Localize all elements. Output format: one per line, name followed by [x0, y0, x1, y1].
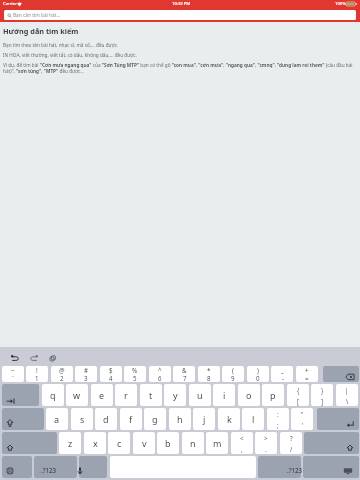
button[interactable]: j: [193, 408, 215, 430]
staticText: r: [124, 389, 128, 401]
button[interactable]: r: [115, 384, 137, 406]
button[interactable]: Change keyboard: [2, 456, 32, 478]
button[interactable]: ?: [280, 432, 302, 454]
staticText: k: [227, 413, 232, 425]
button[interactable]: o: [238, 384, 260, 406]
button[interactable]: s: [71, 408, 93, 430]
staticText: ;: [277, 421, 279, 429]
button[interactable]: Redo: [29, 353, 39, 363]
staticText: #: [84, 366, 88, 374]
staticText: ": [301, 410, 304, 418]
button[interactable]: f: [120, 408, 142, 430]
button[interactable]: u: [189, 384, 211, 406]
button[interactable]: q: [42, 384, 64, 406]
button[interactable]: ~: [2, 366, 24, 382]
button[interactable]: |: [336, 384, 358, 406]
staticText: !: [36, 366, 38, 374]
button[interactable]: m: [206, 432, 228, 454]
button[interactable]: +: [296, 366, 318, 382]
button[interactable]: _: [271, 366, 293, 382]
button[interactable]: >: [255, 432, 277, 454]
button[interactable]: <: [231, 432, 253, 454]
button[interactable]: Dictate: [79, 456, 107, 478]
staticText: =: [305, 374, 309, 382]
staticText: f: [129, 413, 133, 425]
button[interactable]: Bạn cần tìm bài hát...: [4, 10, 356, 20]
button[interactable]: Hide keyboard: [303, 456, 359, 478]
staticText: 3: [84, 374, 88, 382]
staticText: g: [152, 413, 158, 425]
button[interactable]: Caps lock: [2, 408, 44, 430]
button[interactable]: #: [75, 366, 97, 382]
button[interactable]: a: [46, 408, 68, 430]
staticText: 1: [35, 374, 39, 382]
button[interactable]: y: [164, 384, 186, 406]
staticText: _: [281, 366, 284, 374]
staticText: u: [197, 389, 203, 401]
staticText: l: [252, 413, 255, 425]
button[interactable]: $: [100, 366, 122, 382]
staticText: \: [346, 397, 349, 405]
button[interactable]: k: [218, 408, 240, 430]
button[interactable]: p: [262, 384, 284, 406]
button[interactable]: [34, 456, 77, 478]
button[interactable]: Paste: [48, 353, 58, 363]
button[interactable]: ): [247, 366, 269, 382]
staticText: +: [305, 366, 309, 374]
staticText: t: [149, 389, 153, 401]
button[interactable]: Shift: [2, 432, 57, 454]
staticText: {: [297, 386, 300, 394]
button[interactable]: *: [198, 366, 220, 382]
button[interactable]: l: [242, 408, 264, 430]
button[interactable]: Tab: [2, 384, 39, 406]
staticText: @: [59, 366, 65, 374]
staticText: ?: [290, 434, 293, 442]
button[interactable]: d: [95, 408, 117, 430]
button[interactable]: &: [173, 366, 195, 382]
staticText: [: [297, 397, 300, 405]
button[interactable]: i: [213, 384, 235, 406]
staticText: :: [277, 410, 279, 418]
staticText: i: [223, 389, 226, 401]
staticText: Bạn tìm theo tên bài hát, nhạc sĩ, mã số…: [3, 42, 119, 48]
button[interactable]: (: [222, 366, 244, 382]
staticText: x: [93, 437, 98, 449]
button[interactable]: Undo: [10, 353, 20, 363]
staticText: v: [142, 437, 147, 449]
button[interactable]: b: [157, 432, 179, 454]
button[interactable]: g: [144, 408, 166, 430]
button[interactable]: {: [287, 384, 309, 406]
button[interactable]: ": [291, 408, 313, 430]
staticText: 9: [231, 374, 235, 382]
button[interactable]: @: [51, 366, 73, 382]
button[interactable]: Shift: [304, 432, 359, 454]
button[interactable]: Backspace: [323, 366, 359, 382]
button[interactable]: e: [91, 384, 113, 406]
button[interactable]: !: [26, 366, 48, 382]
staticText: 8: [207, 374, 211, 382]
button[interactable]: [258, 456, 301, 478]
staticText: 5: [133, 374, 137, 382]
button[interactable]: c: [108, 432, 130, 454]
button[interactable]: }: [311, 384, 333, 406]
staticText: ]: [321, 397, 324, 405]
button[interactable]: n: [182, 432, 204, 454]
button[interactable]: h: [169, 408, 191, 430]
button[interactable]: w: [66, 384, 88, 406]
button[interactable]: Return: [317, 408, 359, 430]
button[interactable]: x: [84, 432, 106, 454]
staticText: h: [177, 413, 183, 425]
staticText: %: [132, 366, 138, 374]
staticText: -: [282, 374, 284, 382]
staticText: 4: [109, 374, 113, 382]
staticText: Carrier: [3, 1, 17, 7]
button[interactable]: z: [59, 432, 81, 454]
button[interactable]: ^: [149, 366, 171, 382]
staticText: ^: [158, 366, 162, 374]
button[interactable]: :: [267, 408, 289, 430]
button[interactable]: v: [133, 432, 155, 454]
button[interactable]: %: [124, 366, 146, 382]
staticText: 7: [183, 374, 187, 382]
button[interactable]: t: [140, 384, 162, 406]
